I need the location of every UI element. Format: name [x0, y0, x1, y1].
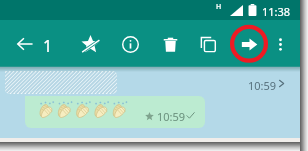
staticText: 11:38	[262, 4, 291, 19]
button[interactable]: More options	[265, 29, 295, 59]
button[interactable]: Forward	[234, 29, 264, 59]
other: Expand	[277, 79, 286, 88]
button[interactable]	[25, 96, 205, 128]
button[interactable]: Back	[10, 29, 40, 59]
button[interactable]: Delete	[155, 29, 185, 59]
staticText: 1	[43, 35, 53, 57]
staticText: 10:59	[157, 109, 186, 124]
button[interactable]: Unstar	[75, 29, 105, 59]
staticText: H	[216, 2, 222, 12]
button[interactable]: 10:59	[248, 78, 277, 93]
button[interactable]	[5, 71, 117, 94]
button[interactable]: Message info	[115, 29, 145, 59]
button[interactable]: Copy	[193, 29, 223, 59]
staticText: 10:59	[248, 78, 277, 93]
